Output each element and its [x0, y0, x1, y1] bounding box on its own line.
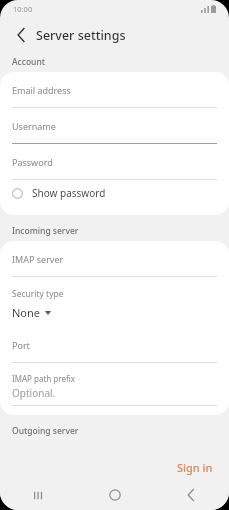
button[interactable]: Port	[0, 327, 229, 363]
staticText: IMAP server	[12, 253, 64, 265]
button[interactable]: Show password	[0, 180, 229, 206]
button[interactable]: Home	[77, 480, 153, 510]
button[interactable]: IMAP path prefix	[0, 363, 229, 406]
staticText: Incoming server	[12, 225, 79, 237]
button[interactable]: Back	[153, 480, 229, 510]
staticText: Outgoing server	[12, 425, 79, 437]
button[interactable]: Sign in	[171, 457, 219, 478]
button[interactable]: Username	[0, 108, 229, 144]
button[interactable]: IMAP server	[0, 241, 229, 277]
button[interactable]: Password	[0, 144, 229, 180]
staticText: None	[12, 305, 41, 320]
button[interactable]: Security type	[0, 277, 229, 327]
staticText: Security type	[12, 288, 64, 300]
staticText: Email address	[12, 84, 71, 96]
button[interactable]: Email address	[0, 72, 229, 108]
staticText: Show password	[32, 186, 106, 200]
button[interactable]: Recent apps	[0, 480, 77, 510]
staticText: Port	[12, 339, 30, 351]
staticText: Optional.	[12, 386, 56, 400]
staticText: Username	[12, 120, 56, 132]
staticText: Password	[12, 156, 53, 168]
staticText: Server settings	[36, 27, 126, 44]
staticText: Account	[12, 56, 46, 68]
staticText: 10:00	[13, 4, 33, 14]
staticText: IMAP path prefix	[12, 373, 75, 384]
button[interactable]: Back	[8, 22, 34, 48]
staticText: Sign in	[177, 460, 213, 475]
